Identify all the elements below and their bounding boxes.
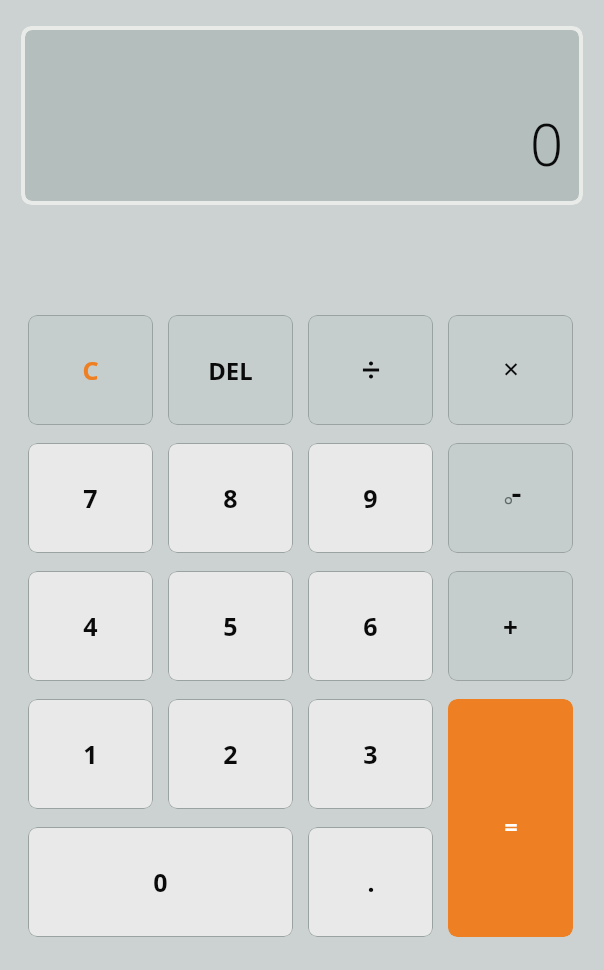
button[interactable]: Divide: [308, 315, 433, 425]
other: Multiply: [502, 358, 520, 382]
button[interactable]: 3: [308, 699, 433, 809]
button[interactable]: 9: [308, 443, 433, 553]
button[interactable]: C: [28, 315, 153, 425]
staticText: ✕: [502, 358, 520, 382]
button[interactable]: Minus: [448, 443, 573, 553]
staticText: 2: [223, 737, 238, 771]
button[interactable]: 0: [28, 827, 293, 937]
staticText: 4: [83, 609, 98, 643]
staticText: 9: [363, 481, 378, 515]
staticText: 7: [83, 481, 98, 515]
button[interactable]: 2: [168, 699, 293, 809]
staticText: 1: [83, 737, 98, 771]
button[interactable]: DEL: [168, 315, 293, 425]
other: Plus: [503, 609, 518, 644]
staticText: 0: [529, 104, 563, 183]
staticText: 0: [153, 865, 168, 899]
staticText: C: [82, 353, 99, 387]
staticText: DEL: [208, 354, 253, 387]
button[interactable]: =: [448, 699, 573, 937]
staticText: 3: [363, 737, 378, 771]
staticText: =: [504, 811, 518, 842]
button[interactable]: 7: [28, 443, 153, 553]
staticText: 5: [223, 609, 238, 643]
staticText: +: [503, 609, 518, 644]
button[interactable]: 5: [168, 571, 293, 681]
button[interactable]: 6: [308, 571, 433, 681]
button[interactable]: .: [308, 827, 433, 937]
staticText: .: [367, 865, 375, 899]
other: Minus: [498, 485, 524, 511]
button[interactable]: 1: [28, 699, 153, 809]
button[interactable]: Multiply: [448, 315, 573, 425]
button[interactable]: 8: [168, 443, 293, 553]
staticText: 8: [223, 481, 238, 515]
button[interactable]: Plus: [448, 571, 573, 681]
other: Divide: [358, 357, 384, 383]
staticText: 6: [363, 609, 378, 643]
button[interactable]: 4: [28, 571, 153, 681]
